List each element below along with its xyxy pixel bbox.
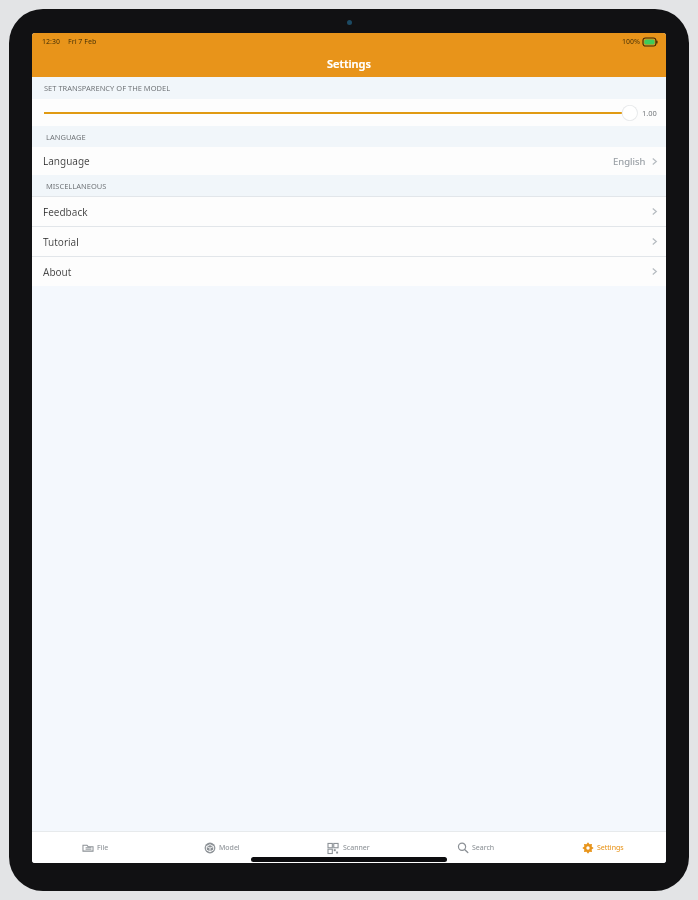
staticText: File — [97, 843, 109, 853]
button[interactable]: Scanner — [285, 832, 412, 863]
staticText: Feedback — [43, 205, 88, 219]
staticText: 100% — [622, 37, 640, 47]
button[interactable]: Language — [32, 147, 666, 175]
button[interactable]: About — [32, 257, 666, 286]
button[interactable]: Search — [412, 832, 539, 863]
button[interactable] — [44, 103, 637, 123]
staticText: About — [43, 265, 72, 279]
staticText: Model — [219, 843, 240, 853]
staticText: Settings — [327, 56, 371, 71]
staticText: MISCELLANEOUS — [46, 181, 107, 191]
button[interactable]: Model — [158, 832, 285, 863]
staticText: Language — [43, 154, 90, 168]
staticText: English — [613, 155, 646, 168]
staticText: 1.00 — [642, 108, 657, 118]
button[interactable]: Tutorial — [32, 227, 666, 256]
staticText: LANGUAGE — [46, 132, 86, 142]
button[interactable]: Settings — [539, 832, 666, 863]
staticText: SET TRANSPARENCY OF THE MODEL — [44, 83, 171, 93]
staticText: 12:30 — [42, 37, 60, 47]
staticText: Settings — [597, 843, 624, 853]
staticText: Search — [472, 843, 495, 853]
staticText: Fri 7 Feb — [68, 37, 97, 47]
button[interactable]: Feedback — [32, 197, 666, 226]
staticText: Tutorial — [43, 235, 79, 249]
button[interactable]: File — [32, 832, 158, 863]
staticText: Scanner — [343, 843, 370, 853]
